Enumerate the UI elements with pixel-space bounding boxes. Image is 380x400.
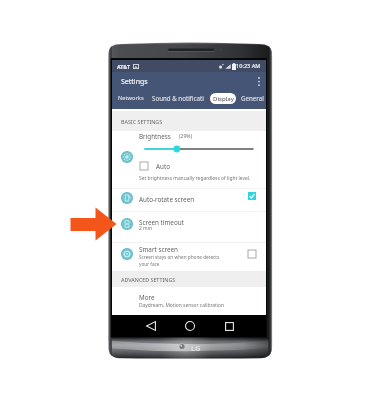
button[interactable]: Back xyxy=(139,315,163,337)
staticText: Smart screen xyxy=(139,245,178,254)
staticText: General xyxy=(241,94,264,102)
button[interactable]: Smart screen xyxy=(112,242,266,272)
staticText: Set brightness manually regardless of li… xyxy=(139,175,251,182)
button[interactable]: Brightness xyxy=(112,130,266,188)
staticText: Screen timeout xyxy=(139,218,184,227)
staticText: Auto xyxy=(156,162,170,171)
staticText: (29%) xyxy=(179,133,193,140)
staticText: Networks xyxy=(118,94,144,102)
staticText: 2 min xyxy=(139,225,152,232)
button[interactable]: Home xyxy=(178,315,202,337)
staticText: Brightness xyxy=(139,132,171,141)
button[interactable]: Networks xyxy=(112,90,145,109)
button[interactable]: Recent apps xyxy=(217,315,241,337)
staticText: More xyxy=(139,293,155,302)
button[interactable]: Auto-rotate screen xyxy=(112,189,266,211)
staticText: Display xyxy=(213,95,234,103)
staticText: ADVANCED SETTINGS xyxy=(121,276,176,283)
button[interactable]: More xyxy=(112,288,266,316)
button[interactable]: More options xyxy=(253,72,265,90)
staticText: LG xyxy=(191,343,201,353)
staticText: Auto-rotate screen xyxy=(139,195,195,204)
button[interactable]: Sound & notificati xyxy=(148,90,206,109)
button[interactable]: General xyxy=(238,90,265,109)
staticText: Sound & notificati xyxy=(152,94,204,102)
staticText: Settings xyxy=(121,77,148,87)
staticText: 10:23 AM xyxy=(236,62,261,70)
staticText: AT&T xyxy=(117,63,130,70)
staticText: Screen stays on when phone detects your … xyxy=(139,254,220,268)
button[interactable]: Display xyxy=(210,93,236,104)
staticText: Daydream, Motion sensor calibration xyxy=(139,302,225,309)
staticText: BASIC SETTINGS xyxy=(121,118,163,125)
button[interactable]: Screen timeout xyxy=(112,211,266,241)
